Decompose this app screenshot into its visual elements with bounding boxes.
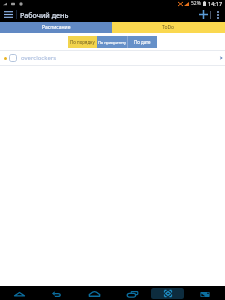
button[interactable]: По порядку [68, 36, 97, 48]
button[interactable]: Multi window [151, 288, 184, 299]
staticText: По дате [134, 39, 151, 45]
button[interactable]: More options [211, 7, 225, 22]
button[interactable]: Navigate up [2, 286, 36, 300]
button[interactable]: Recent apps [115, 286, 149, 300]
button[interactable]: По дате [128, 36, 157, 48]
staticText: ToDo [162, 24, 175, 31]
button[interactable]: Home [77, 286, 111, 300]
button[interactable]: overclockers [0, 51, 225, 65]
button[interactable]: Back [39, 286, 73, 300]
button[interactable]: ToDo [112, 22, 225, 33]
staticText: По порядку [70, 39, 95, 45]
staticText: 52% [191, 0, 201, 7]
staticText: По приоритету [98, 40, 127, 45]
button[interactable]: Расписание [0, 22, 112, 33]
staticText: overclockers [21, 54, 57, 62]
button[interactable]: Open navigation drawer [0, 7, 16, 22]
button[interactable]: Screenshot [188, 286, 222, 300]
staticText: Рабочий день [20, 10, 69, 20]
staticText: 14:17 [208, 0, 223, 7]
button[interactable]: По приоритету [97, 36, 127, 48]
staticText: Расписание [42, 24, 71, 31]
button[interactable]: Add task [196, 7, 210, 22]
